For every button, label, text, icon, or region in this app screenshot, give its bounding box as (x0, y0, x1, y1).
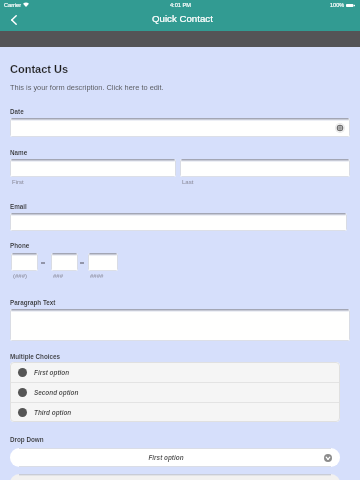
button[interactable] (88, 253, 118, 271)
button[interactable] (10, 159, 176, 177)
staticText: Quick Contact (152, 13, 213, 24)
button[interactable]: Back (4, 11, 24, 28)
button[interactable] (10, 213, 347, 231)
staticText: Email (10, 203, 27, 210)
staticText: Third option (34, 409, 72, 416)
staticText: Name (10, 149, 28, 156)
staticText: Second option (34, 389, 79, 396)
staticText: Paragraph Text (10, 299, 56, 306)
button[interactable]: First option (18, 362, 340, 382)
button[interactable] (11, 253, 38, 271)
button[interactable]: Third option (18, 403, 340, 422)
button[interactable]: Second option (18, 383, 340, 402)
staticText: Phone (10, 242, 30, 249)
staticText: This is your form description. Click her… (10, 83, 164, 91)
button[interactable] (51, 253, 78, 271)
button[interactable] (180, 159, 350, 177)
staticText: #### (90, 273, 104, 280)
staticText: Last (182, 179, 194, 186)
button[interactable] (10, 309, 350, 341)
staticText: Multiple Choices (10, 353, 61, 360)
staticText: 100% (330, 2, 345, 8)
staticText: First (12, 179, 24, 186)
button[interactable] (10, 118, 350, 137)
staticText: 4:01 PM (170, 2, 191, 8)
staticText: Drop Down (10, 436, 44, 443)
staticText: Contact Us (10, 63, 69, 75)
button[interactable]: First option (10, 448, 340, 467)
staticText: First option (10, 454, 322, 461)
staticText: First option (34, 369, 70, 376)
staticText: Date (10, 108, 24, 115)
staticText: Carrier (4, 2, 22, 8)
staticText: ### (53, 273, 64, 280)
staticText: (###) (13, 273, 28, 280)
